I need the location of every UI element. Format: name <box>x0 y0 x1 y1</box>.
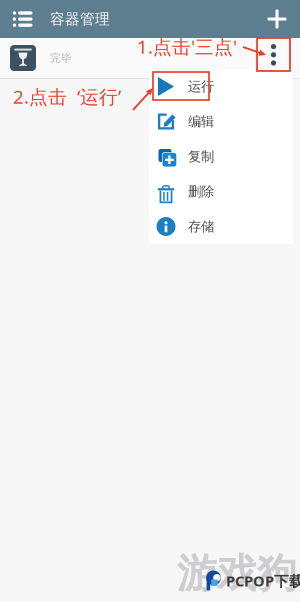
staticText: 1.点击'三点' <box>137 34 237 59</box>
staticText: 存储 <box>188 218 214 235</box>
button[interactable]: Menu <box>7 0 38 38</box>
staticText: 游戏狗 <box>177 549 297 598</box>
staticText: 删除 <box>188 183 214 200</box>
staticText: 运行 <box>188 78 214 95</box>
button[interactable]: More options <box>257 38 290 71</box>
button[interactable]: 编辑 <box>149 104 293 139</box>
button[interactable]: 存储 <box>149 209 293 244</box>
button[interactable]: 运行 <box>149 69 293 104</box>
staticText: 容器管理 <box>50 10 110 28</box>
staticText: 2.点击 ‘运行’ <box>13 84 121 109</box>
staticText: PCPOP下载 <box>226 571 300 591</box>
button[interactable]: 完毕 <box>0 38 300 78</box>
button[interactable]: 删除 <box>149 174 293 209</box>
button[interactable]: 复制 <box>149 139 293 174</box>
staticText: 复制 <box>188 148 214 165</box>
staticText: 完毕 <box>50 51 72 64</box>
staticText: 编辑 <box>188 113 214 130</box>
button[interactable]: Add <box>260 0 294 38</box>
